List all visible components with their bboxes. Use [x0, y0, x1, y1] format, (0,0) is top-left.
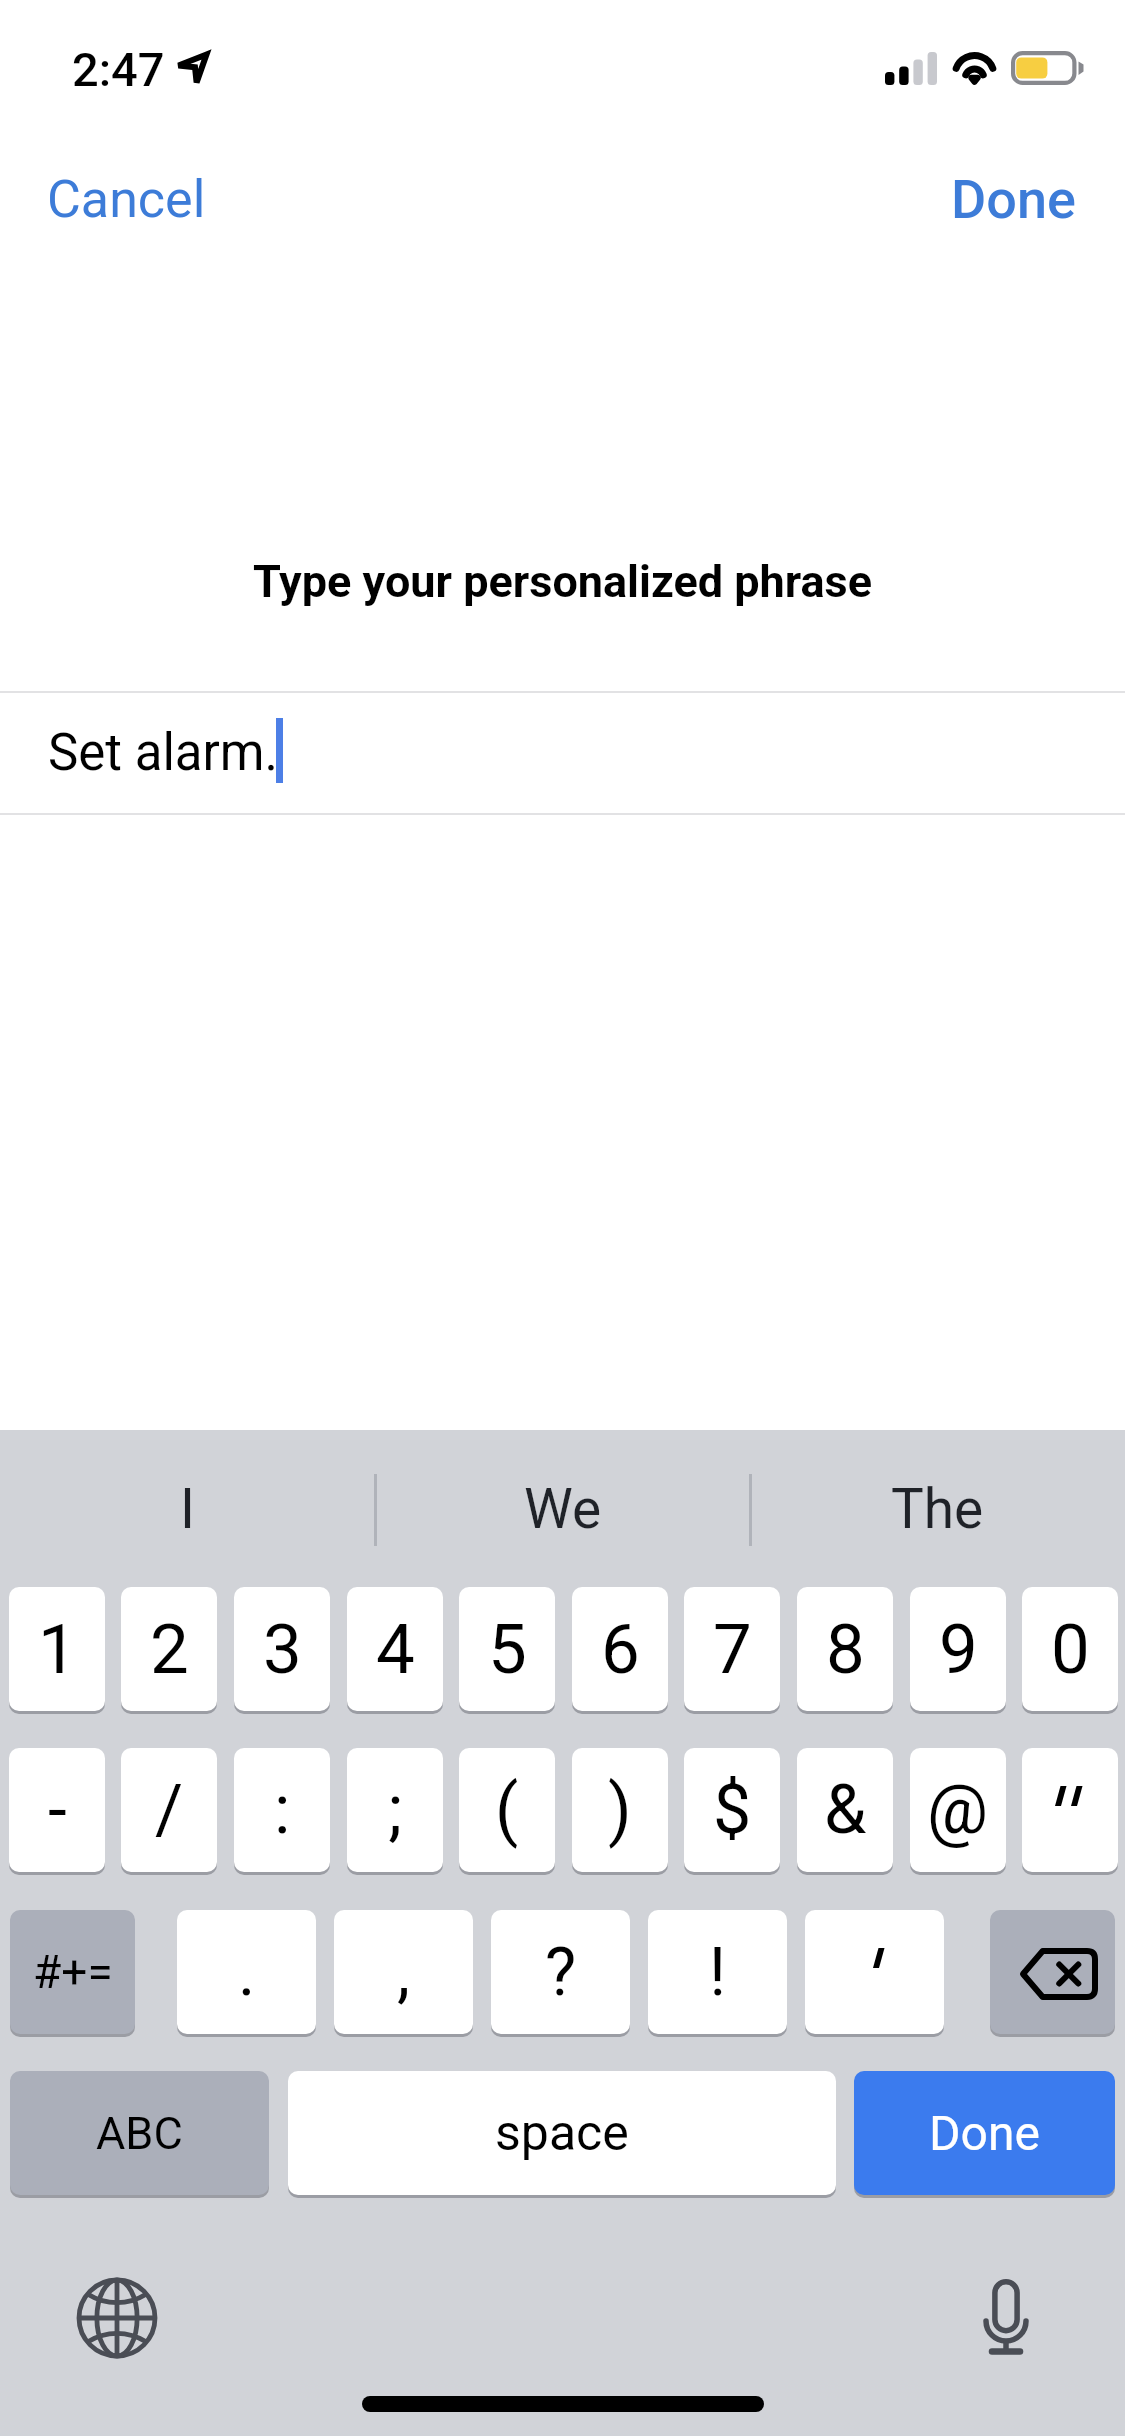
staticText: 1: [38, 1609, 77, 1690]
button[interactable]: We: [375, 1430, 750, 1587]
button[interactable]: 8: [797, 1587, 893, 1711]
staticText: 8: [826, 1609, 865, 1690]
button[interactable]: Apostrophe: [805, 1910, 944, 2034]
staticText: Done: [929, 2105, 1040, 2161]
staticText: 6: [601, 1609, 640, 1690]
button[interactable]: ABC: [10, 2071, 269, 2195]
staticText: /: [155, 1770, 184, 1850]
staticText: $: [713, 1770, 752, 1850]
button[interactable]: Quotation mark: [1022, 1748, 1118, 1872]
button[interactable]: Change keyboard: [62, 2263, 172, 2373]
button[interactable]: (: [459, 1748, 555, 1872]
staticText: 2:47: [72, 42, 165, 97]
staticText: 2: [150, 1609, 189, 1690]
staticText: The: [891, 1477, 984, 1541]
staticText: #+=: [33, 1945, 113, 1999]
staticText: ): [608, 1770, 632, 1850]
staticText: 7: [713, 1609, 752, 1690]
button[interactable]: Delete: [990, 1910, 1115, 2034]
staticText: Done: [951, 168, 1076, 231]
staticText: 5: [488, 1609, 527, 1690]
button[interactable]: 0: [1022, 1587, 1118, 1711]
staticText: 0: [1051, 1609, 1090, 1690]
button[interactable]: $: [684, 1748, 780, 1872]
staticText: I: [180, 1477, 195, 1541]
staticText: !: [709, 1934, 727, 2011]
button[interactable]: ;: [347, 1748, 443, 1872]
staticText: ;: [388, 1770, 403, 1850]
button[interactable]: 4: [347, 1587, 443, 1711]
staticText: space: [495, 2104, 629, 2163]
button[interactable]: 2: [121, 1587, 217, 1711]
button[interactable]: 6: [572, 1587, 668, 1711]
button[interactable]: -: [9, 1748, 105, 1872]
staticText: 4: [376, 1609, 415, 1690]
button[interactable]: !: [648, 1910, 787, 2034]
button[interactable]: 5: [459, 1587, 555, 1711]
button[interactable]: #+=: [10, 1910, 135, 2034]
staticText: ?: [545, 1934, 577, 2011]
staticText: Cancel: [47, 169, 206, 230]
button[interactable]: The: [750, 1430, 1125, 1587]
staticText: Set alarm.: [48, 723, 278, 783]
button[interactable]: Done: [854, 2071, 1115, 2195]
button[interactable]: @: [910, 1748, 1006, 1872]
button[interactable]: Cancel: [35, 159, 218, 240]
button[interactable]: :: [234, 1748, 330, 1872]
button[interactable]: 9: [910, 1587, 1006, 1711]
staticText: &: [824, 1770, 867, 1850]
staticText: Type your personalized phrase: [0, 555, 1125, 608]
staticText: .: [238, 1934, 256, 2011]
staticText: (: [495, 1770, 519, 1850]
button[interactable]: ?: [491, 1910, 630, 2034]
button[interactable]: I: [0, 1430, 375, 1587]
button[interactable]: Done: [939, 158, 1088, 241]
staticText: 3: [263, 1609, 302, 1690]
button[interactable]: .: [177, 1910, 316, 2034]
staticText: ABC: [96, 2107, 183, 2160]
staticText: @: [927, 1770, 989, 1850]
staticText: :: [274, 1770, 291, 1850]
button[interactable]: ,: [334, 1910, 473, 2034]
button[interactable]: ): [572, 1748, 668, 1872]
button[interactable]: /: [121, 1748, 217, 1872]
button[interactable]: 1: [9, 1587, 105, 1711]
button[interactable]: 7: [684, 1587, 780, 1711]
button[interactable]: Dictation: [951, 2262, 1061, 2372]
staticText: -: [48, 1770, 67, 1850]
staticText: ,: [397, 1934, 410, 2011]
button[interactable]: space: [288, 2071, 836, 2195]
staticText: 9: [939, 1609, 978, 1690]
button[interactable]: &: [797, 1748, 893, 1872]
button[interactable]: 3: [234, 1587, 330, 1711]
staticText: We: [524, 1477, 602, 1541]
